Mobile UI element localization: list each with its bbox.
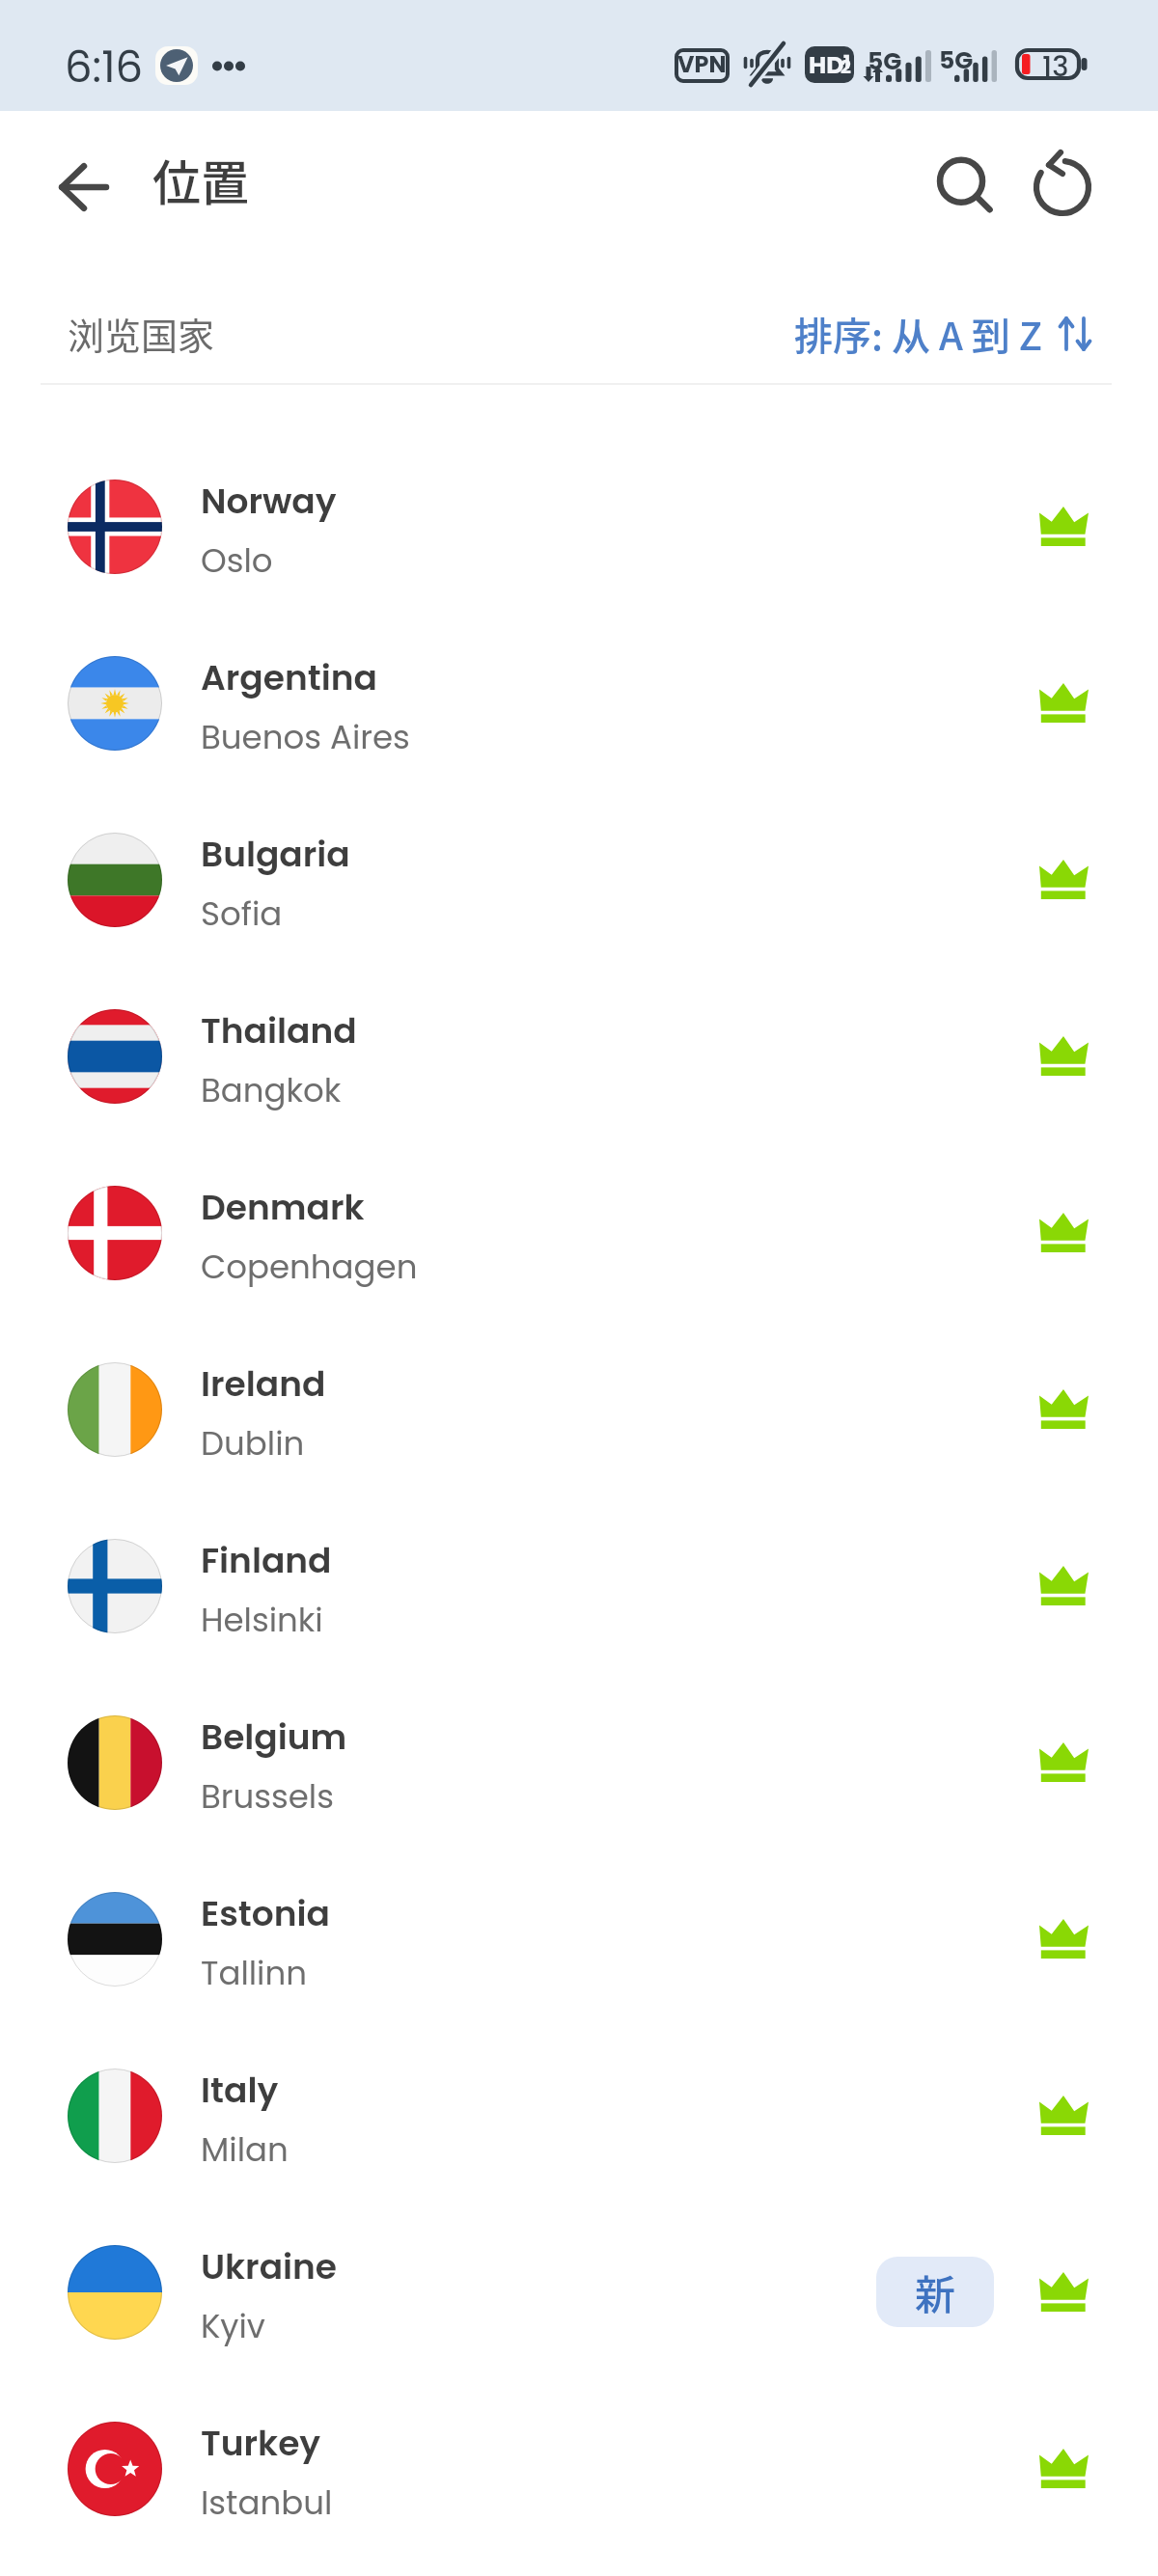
staticText: Milan	[201, 2126, 289, 2173]
other: Premium location	[1039, 507, 1089, 546]
staticText: Buenos Aires	[201, 714, 410, 760]
staticText: Denmark	[201, 1183, 365, 1231]
staticText: Ireland	[201, 1359, 326, 1408]
other: Premium location	[1039, 1742, 1089, 1782]
staticText: 浏览国家	[68, 307, 215, 360]
staticText: 5G	[868, 44, 902, 78]
staticText: Argentina	[201, 653, 377, 701]
other: Premium location	[1039, 1036, 1089, 1076]
button[interactable]: Italy	[0, 2027, 1158, 2204]
other: Premium location	[1039, 1213, 1089, 1252]
other: Premium location	[1039, 2096, 1089, 2135]
staticText: Copenhagen	[201, 1244, 418, 1290]
staticText: Italy	[201, 2066, 279, 2114]
other: Premium location	[1039, 2449, 1089, 2488]
staticText: Belgium	[201, 1713, 347, 1761]
button[interactable]: 新	[876, 2257, 994, 2327]
staticText: 13	[1042, 47, 1069, 79]
staticText: 新	[915, 2262, 956, 2321]
staticText: 排序: 从 A 到 Z	[794, 306, 1043, 362]
other: Premium location	[1039, 860, 1089, 899]
button[interactable]: Ireland	[0, 1321, 1158, 1497]
staticText: 1	[843, 49, 851, 75]
staticText: 5G	[939, 43, 974, 77]
staticText: 6:16	[65, 37, 144, 97]
button[interactable]: Norway	[0, 438, 1158, 615]
staticText: 位置	[152, 145, 249, 214]
staticText: Thailand	[201, 1006, 357, 1055]
staticText: Kyiv	[201, 2303, 265, 2349]
staticText: Estonia	[201, 1889, 330, 1937]
staticText: Oslo	[201, 537, 273, 584]
button[interactable]: Bulgaria	[0, 791, 1158, 968]
other: Premium location	[1039, 683, 1089, 723]
other: Premium location	[1039, 1566, 1089, 1605]
staticText: HD	[809, 48, 844, 82]
other: Premium location	[1039, 1389, 1089, 1429]
staticText: Norway	[201, 477, 337, 525]
button[interactable]: Finland	[0, 1497, 1158, 1674]
other: Premium location	[1039, 2272, 1089, 2312]
staticText: Bangkok	[201, 1067, 342, 1113]
staticText: Ukraine	[201, 2242, 338, 2290]
button[interactable]: Thailand	[0, 968, 1158, 1144]
button[interactable]: Ukraine	[0, 2204, 1158, 2380]
button[interactable]: Refresh	[1016, 140, 1109, 233]
button[interactable]: Belgium	[0, 1674, 1158, 1850]
button[interactable]: Estonia	[0, 1850, 1158, 2027]
button[interactable]: Search	[919, 140, 1011, 233]
staticText: 2	[841, 54, 851, 80]
staticText: Sofia	[201, 891, 283, 937]
staticText: VPN	[677, 48, 727, 81]
staticText: Finland	[201, 1536, 332, 1584]
staticText: Turkey	[201, 2419, 321, 2467]
button[interactable]: 排序: 从 A 到 Z	[786, 298, 1098, 370]
button[interactable]: Denmark	[0, 1144, 1158, 1321]
staticText: Istanbul	[201, 2480, 333, 2526]
staticText: Tallinn	[201, 1950, 307, 1996]
staticText: Brussels	[201, 1773, 334, 1820]
button[interactable]: Back	[38, 141, 130, 233]
staticText: Dublin	[201, 1420, 305, 1466]
button[interactable]: Turkey	[0, 2380, 1158, 2557]
staticText: Helsinki	[201, 1597, 323, 1643]
staticText: Bulgaria	[201, 830, 350, 878]
other: Premium location	[1039, 1919, 1089, 1959]
button[interactable]: Argentina	[0, 615, 1158, 791]
